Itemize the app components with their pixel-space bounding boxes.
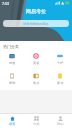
- button[interactable]: 食品: [24, 73, 48, 85]
- button[interactable]: 分类: [24, 116, 48, 126]
- staticText: 个护: [57, 61, 64, 65]
- button[interactable]: 我的: [48, 116, 72, 126]
- staticText: 服饰: [9, 81, 16, 85]
- staticText: 食品: [33, 81, 40, 85]
- staticText: 我的: [57, 122, 64, 126]
- staticText: 分类: [33, 122, 40, 126]
- button[interactable]: Search: [3, 20, 69, 27]
- button[interactable]: 美妆: [24, 53, 48, 65]
- staticText: 7:53: [2, 1, 9, 6]
- staticText: 首页: [9, 122, 16, 126]
- button[interactable]: 个护: [48, 53, 72, 65]
- button[interactable]: 服饰: [0, 73, 24, 85]
- staticText: 美妆: [33, 61, 40, 65]
- button[interactable]: 母婴: [0, 53, 24, 65]
- staticText: 网易考拉: [0, 8, 72, 14]
- button[interactable]: 首页: [0, 116, 24, 126]
- staticText: 母婴: [9, 61, 16, 65]
- button[interactable]: 家居: [48, 73, 72, 85]
- staticText: 热门分类: [3, 44, 19, 49]
- staticText: 家居: [57, 81, 64, 85]
- staticText: 搜索你想要的商品: [23, 22, 49, 26]
